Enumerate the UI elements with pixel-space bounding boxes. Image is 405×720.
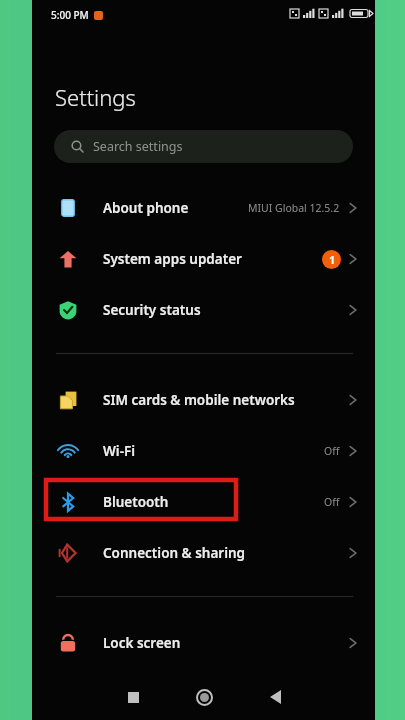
staticText: Security status: [103, 301, 201, 319]
button[interactable]: Home: [182, 675, 226, 719]
button[interactable]: System apps updater: [32, 237, 375, 281]
staticText: About phone: [103, 199, 189, 217]
staticText: 1: [329, 253, 335, 267]
staticText: System apps updater: [103, 250, 242, 268]
staticText: Connection & sharing: [103, 544, 246, 562]
button[interactable]: Lock screen: [32, 621, 375, 665]
staticText: Off: [324, 444, 340, 458]
button[interactable]: Recent apps: [111, 675, 155, 719]
staticText: MIUI Global 12.5.2: [248, 201, 340, 215]
button[interactable]: Connection & sharing: [32, 531, 375, 575]
button[interactable]: Wi-Fi: [32, 429, 375, 473]
button[interactable]: Back: [253, 675, 297, 719]
staticText: Lock screen: [103, 634, 181, 652]
staticText: Search settings: [93, 138, 183, 155]
button[interactable]: Search settings: [54, 130, 353, 163]
button[interactable]: Bluetooth: [32, 480, 375, 524]
button[interactable]: About phone: [32, 186, 375, 230]
button[interactable]: SIM cards & mobile networks: [32, 378, 375, 422]
staticText: 5:00 PM: [51, 8, 89, 22]
staticText: Off: [324, 495, 340, 509]
button[interactable]: Security status: [32, 288, 375, 332]
staticText: Wi-Fi: [103, 442, 136, 460]
staticText: SIM cards & mobile networks: [103, 391, 295, 409]
staticText: Bluetooth: [103, 493, 169, 511]
staticText: Settings: [55, 82, 136, 112]
